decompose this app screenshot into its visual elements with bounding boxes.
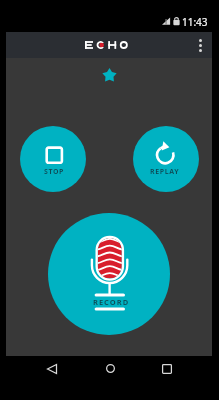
button[interactable]: Recent apps [156,358,178,380]
button[interactable]: Back [41,358,63,380]
staticText: REPLAY [150,167,180,177]
staticText: STOP [44,167,65,177]
button[interactable]: More options [188,33,212,57]
button[interactable]: Home [99,357,121,379]
staticText: 11:43 [182,15,208,29]
button[interactable] [133,126,199,192]
button[interactable] [48,213,170,335]
staticText: RECORD [93,297,130,307]
button[interactable] [20,126,86,192]
